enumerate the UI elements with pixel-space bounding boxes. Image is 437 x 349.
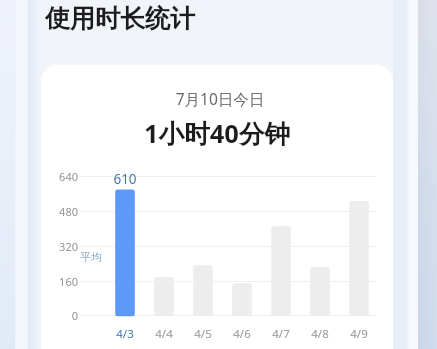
staticText: 0 <box>56 308 78 323</box>
staticText: 4/5 <box>185 326 221 342</box>
staticText: 7月10日今日 <box>44 88 396 109</box>
staticText: 480 <box>56 204 78 219</box>
staticText: 使用时长统计 <box>45 3 195 34</box>
button[interactable]: Select day 4/4 <box>146 172 182 344</box>
staticText: 4/6 <box>224 326 260 342</box>
staticText: 640 <box>56 169 78 184</box>
button[interactable]: Select day 4/7 <box>263 172 299 344</box>
button[interactable] <box>41 65 393 349</box>
staticText: 160 <box>56 274 78 289</box>
button[interactable]: Select day 4/8 <box>302 172 338 344</box>
button[interactable]: Select day 4/3 <box>107 172 143 344</box>
button[interactable]: Select day 4/9 <box>341 172 377 344</box>
staticText: 320 <box>56 239 78 254</box>
button[interactable]: Select day 4/5 <box>185 172 221 344</box>
staticText: 4/4 <box>146 326 182 342</box>
staticText: 平均 <box>80 250 102 264</box>
staticText: 610 <box>105 170 145 188</box>
staticText: 4/7 <box>263 326 299 342</box>
button[interactable]: Select day 4/6 <box>224 172 260 344</box>
staticText: 1小时40分钟 <box>41 116 393 151</box>
staticText: 4/8 <box>302 326 338 342</box>
staticText: 4/3 <box>107 326 143 342</box>
staticText: 4/9 <box>341 326 377 342</box>
